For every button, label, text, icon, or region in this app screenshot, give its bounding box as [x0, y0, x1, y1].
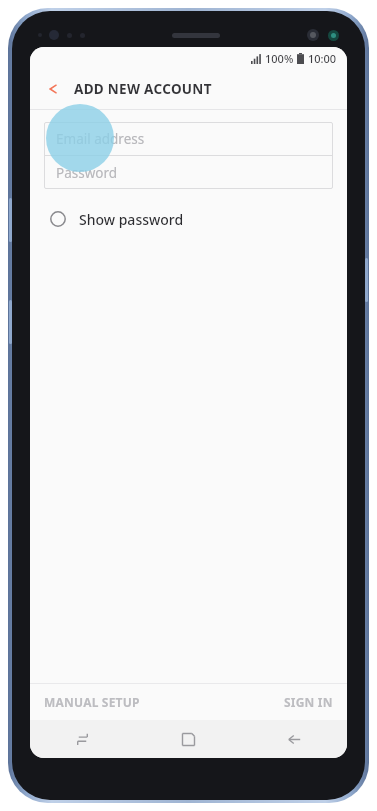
button[interactable]: Password [44, 156, 333, 189]
staticText: MANUAL SETUP [44, 694, 140, 710]
button[interactable]: SIGN IN [188, 684, 347, 720]
button[interactable]: Show password [30, 202, 347, 236]
button[interactable]: Recents [30, 720, 135, 758]
staticText: 100% [265, 51, 294, 66]
staticText: Email address [56, 130, 145, 148]
button[interactable]: Home [135, 720, 241, 758]
staticText: ADD NEW ACCOUNT [74, 80, 212, 98]
staticText: 10:00 [308, 51, 337, 66]
staticText: SIGN IN [284, 694, 333, 710]
staticText: Show password [79, 210, 184, 229]
staticText: Password [56, 164, 118, 182]
button[interactable]: MANUAL SETUP [30, 684, 188, 720]
button[interactable]: Back [36, 72, 70, 106]
button[interactable]: Back [241, 720, 347, 758]
button[interactable]: Email address [44, 122, 333, 155]
